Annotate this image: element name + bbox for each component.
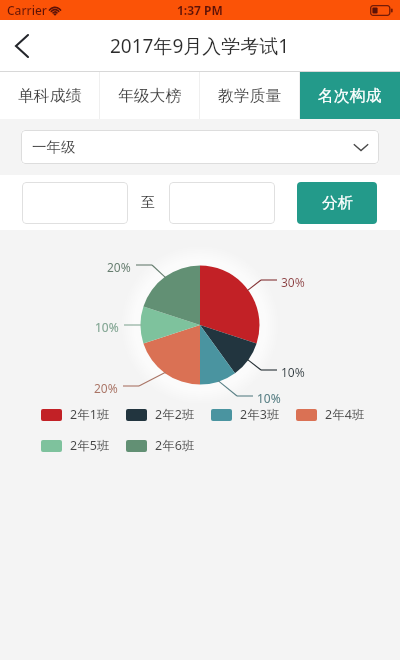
button[interactable] [22, 182, 128, 224]
button[interactable]: 单科成绩 [0, 72, 100, 119]
staticText: 分析 [322, 193, 353, 213]
button[interactable]: 一年级 [21, 130, 379, 164]
staticText: 2年3班 [240, 406, 280, 423]
staticText: Carrier [7, 2, 47, 18]
staticText: 10% [257, 390, 281, 406]
staticText: 10% [281, 364, 305, 380]
staticText: 单科成绩 [18, 86, 82, 106]
staticText: 名次构成 [318, 86, 382, 106]
staticText: 2年6班 [155, 437, 195, 454]
staticText: 至 [141, 194, 155, 212]
staticText: 30% [281, 274, 305, 290]
staticText: 2017年9月入学考试1 [110, 33, 290, 59]
staticText: 教学质量 [218, 86, 282, 106]
staticText: 2年1班 [70, 406, 110, 423]
button[interactable]: 分析 [297, 182, 377, 224]
staticText: 20% [94, 380, 118, 396]
staticText: 一年级 [32, 138, 76, 156]
button[interactable]: 教学质量 [200, 72, 300, 119]
staticText: 2年4班 [325, 406, 365, 423]
button[interactable]: Back [0, 24, 44, 68]
staticText: 20% [107, 259, 131, 275]
button[interactable] [169, 182, 275, 224]
staticText: 2年2班 [155, 406, 195, 423]
staticText: 10% [95, 319, 119, 335]
button[interactable]: 年级大榜 [100, 72, 200, 119]
staticText: 年级大榜 [118, 86, 182, 106]
button[interactable]: 名次构成 [300, 72, 400, 119]
staticText: 1:37 PM [177, 2, 223, 18]
staticText: 2年5班 [70, 437, 110, 454]
